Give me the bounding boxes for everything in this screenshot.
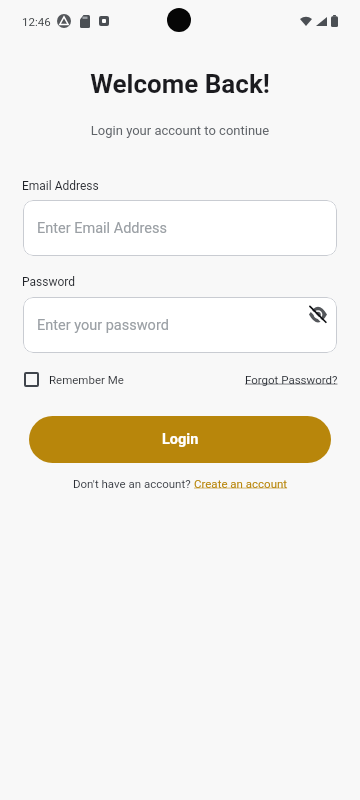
button[interactable]: Enter your password	[23, 297, 337, 353]
staticText: Login your account to continue	[0, 123, 360, 138]
staticText: Login	[162, 431, 199, 448]
staticText: Enter your password	[37, 317, 169, 334]
staticText: Welcome Back!	[0, 69, 360, 99]
button[interactable]: Forgot Password?	[245, 373, 338, 386]
staticText: Password	[22, 275, 76, 289]
staticText: 12:46	[22, 15, 51, 28]
button[interactable]: Create an account	[194, 477, 288, 490]
staticText: Enter Email Address	[37, 220, 167, 237]
button[interactable]: Login	[29, 416, 331, 463]
button[interactable]: Remember Me	[24, 372, 124, 387]
staticText: Remember Me	[49, 373, 124, 386]
staticText: Don't have an account?	[73, 477, 194, 490]
staticText: Email Address	[22, 179, 99, 193]
button[interactable]: Enter Email Address	[23, 200, 337, 256]
